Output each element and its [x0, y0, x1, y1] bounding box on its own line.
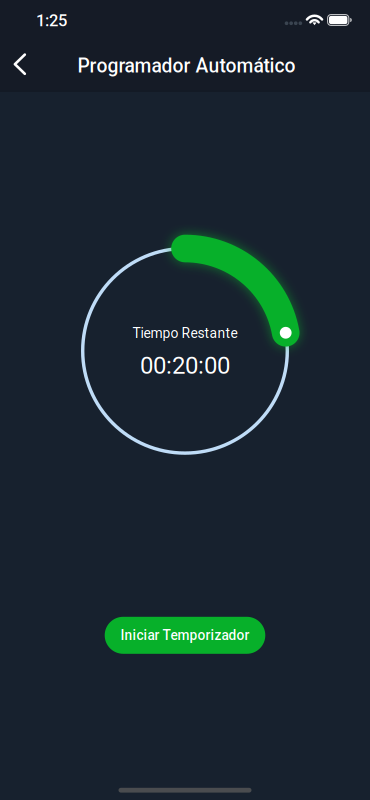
- button[interactable]: Iniciar Temporizador: [105, 617, 265, 654]
- button[interactable]: Back: [0, 44, 44, 90]
- staticText: Tiempo Restante: [132, 325, 237, 341]
- staticText: Programador Automático: [77, 55, 295, 77]
- staticText: Iniciar Temporizador: [120, 627, 249, 643]
- staticText: 00:20:00: [140, 351, 230, 379]
- staticText: 1:25: [36, 11, 67, 30]
